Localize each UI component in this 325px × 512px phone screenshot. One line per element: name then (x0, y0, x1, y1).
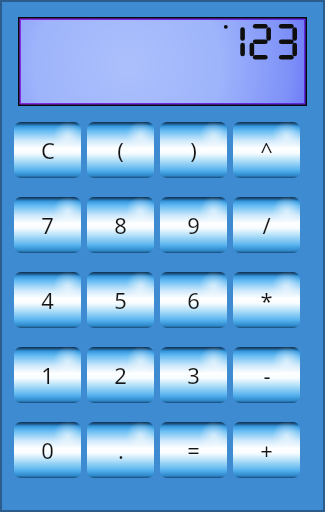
staticText: 9 (187, 210, 200, 240)
staticText: 7 (41, 210, 54, 240)
button[interactable]: 7 (14, 197, 81, 253)
button[interactable]: 4 (14, 272, 81, 328)
button[interactable]: 6 (160, 272, 227, 328)
button[interactable]: Clear (14, 122, 81, 178)
staticText: 4 (41, 285, 54, 315)
staticText: 2 (114, 360, 127, 390)
button[interactable]: 0 (14, 422, 81, 478)
button[interactable]: Close parenthesis (160, 122, 227, 178)
staticText: * (260, 285, 273, 315)
button[interactable]: Decimal point (87, 422, 154, 478)
staticText: ( (117, 135, 124, 165)
staticText: 3 (187, 360, 200, 390)
staticText: ) (190, 135, 197, 165)
button[interactable]: Divide (233, 197, 300, 253)
button[interactable]: 9 (160, 197, 227, 253)
staticText: 1 (41, 360, 54, 390)
staticText: = (187, 435, 200, 465)
staticText: 6 (187, 285, 200, 315)
staticText: 5 (114, 285, 127, 315)
button[interactable]: Open parenthesis (87, 122, 154, 178)
button[interactable]: Equals (160, 422, 227, 478)
staticText: + (260, 435, 273, 465)
button[interactable]: Power (233, 122, 300, 178)
button[interactable]: 2 (87, 347, 154, 403)
staticText: ^ (260, 135, 273, 165)
button[interactable]: 5 (87, 272, 154, 328)
button[interactable]: 3 (160, 347, 227, 403)
staticText: 8 (114, 210, 127, 240)
button[interactable]: Minus (233, 347, 300, 403)
staticText: C (41, 135, 55, 165)
staticText: 0 (41, 435, 54, 465)
staticText: . (118, 435, 124, 465)
button[interactable]: 8 (87, 197, 154, 253)
button[interactable]: 1 (14, 347, 81, 403)
button[interactable]: Multiply (233, 272, 300, 328)
button[interactable]: Plus (233, 422, 300, 478)
staticText: / (262, 210, 271, 240)
staticText: - (263, 360, 271, 390)
